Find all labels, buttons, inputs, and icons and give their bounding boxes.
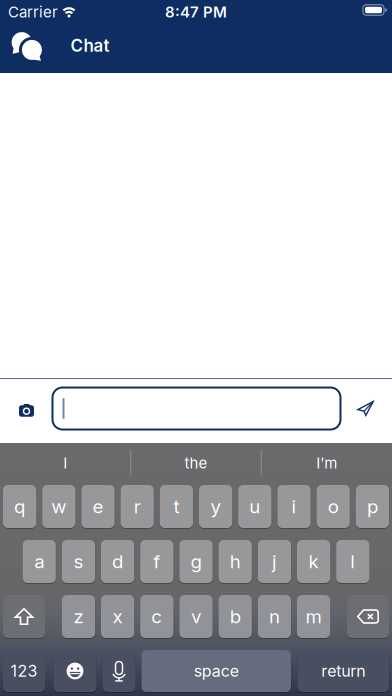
staticText: space [194, 661, 239, 681]
button[interactable]: a [23, 540, 56, 583]
staticText: a [34, 550, 44, 573]
button[interactable]: return [297, 650, 389, 692]
staticText: y [211, 495, 221, 518]
button[interactable]: q [3, 485, 36, 528]
button[interactable]: s [62, 540, 95, 583]
staticText: e [92, 495, 103, 518]
button[interactable]: l [336, 540, 369, 583]
button[interactable]: k [297, 540, 330, 583]
button[interactable]: 123 [3, 650, 45, 692]
button[interactable]: v [179, 595, 213, 638]
staticText: m [306, 605, 322, 628]
staticText: l [350, 550, 355, 573]
staticText: I [63, 454, 67, 472]
button[interactable]: Message field [52, 387, 340, 429]
button[interactable]: d [101, 540, 134, 583]
staticText: z [73, 605, 83, 628]
staticText: g [190, 550, 201, 573]
staticText: 123 [10, 661, 37, 681]
button[interactable]: z [62, 595, 95, 638]
button[interactable]: b [219, 595, 252, 638]
staticText: q [14, 495, 25, 518]
button[interactable]: f [140, 540, 173, 583]
button[interactable]: e [81, 485, 115, 528]
button[interactable]: i [277, 485, 311, 528]
button[interactable]: p [356, 485, 389, 528]
button[interactable]: w [42, 485, 75, 528]
button[interactable]: c [140, 595, 173, 638]
staticText: w [51, 495, 66, 518]
button[interactable]: u [238, 485, 271, 528]
staticText: Carrier [8, 3, 58, 21]
staticText: I’m [316, 454, 337, 472]
button[interactable]: the [136, 444, 256, 482]
staticText: 8:47 PM [165, 3, 227, 21]
button[interactable]: r [121, 485, 154, 528]
staticText: x [113, 605, 123, 628]
button[interactable]: y [199, 485, 232, 528]
button[interactable]: Delete [347, 595, 389, 638]
button[interactable]: Emoji [53, 650, 96, 692]
button[interactable]: I [5, 444, 125, 482]
staticText: b [230, 605, 241, 628]
button[interactable]: h [219, 540, 252, 583]
staticText: t [173, 495, 179, 518]
staticText: Chat [70, 35, 109, 56]
button[interactable]: g [179, 540, 213, 583]
button[interactable]: Send [357, 401, 373, 416]
button[interactable]: Shift [3, 595, 45, 638]
staticText: c [151, 605, 162, 628]
staticText: h [230, 550, 241, 573]
staticText: n [269, 605, 280, 628]
staticText: k [309, 550, 319, 573]
staticText: f [153, 550, 160, 573]
staticText: j [272, 550, 277, 573]
button[interactable]: j [258, 540, 291, 583]
staticText: i [291, 495, 296, 518]
button[interactable]: t [160, 485, 193, 528]
button[interactable]: Dictation [102, 650, 135, 692]
button[interactable]: space [141, 650, 291, 692]
staticText: u [249, 495, 260, 518]
button[interactable]: m [297, 595, 330, 638]
button[interactable]: Camera [19, 403, 34, 417]
staticText: return [321, 661, 365, 681]
button[interactable]: x [101, 595, 134, 638]
staticText: s [73, 550, 83, 573]
staticText: o [328, 495, 339, 518]
button[interactable]: o [317, 485, 350, 528]
staticText: v [191, 605, 201, 628]
button[interactable]: n [258, 595, 291, 638]
staticText: r [134, 495, 141, 518]
staticText: p [367, 495, 378, 518]
staticText: d [112, 550, 123, 573]
staticText: the [184, 454, 207, 472]
button[interactable]: I’m [267, 444, 387, 482]
